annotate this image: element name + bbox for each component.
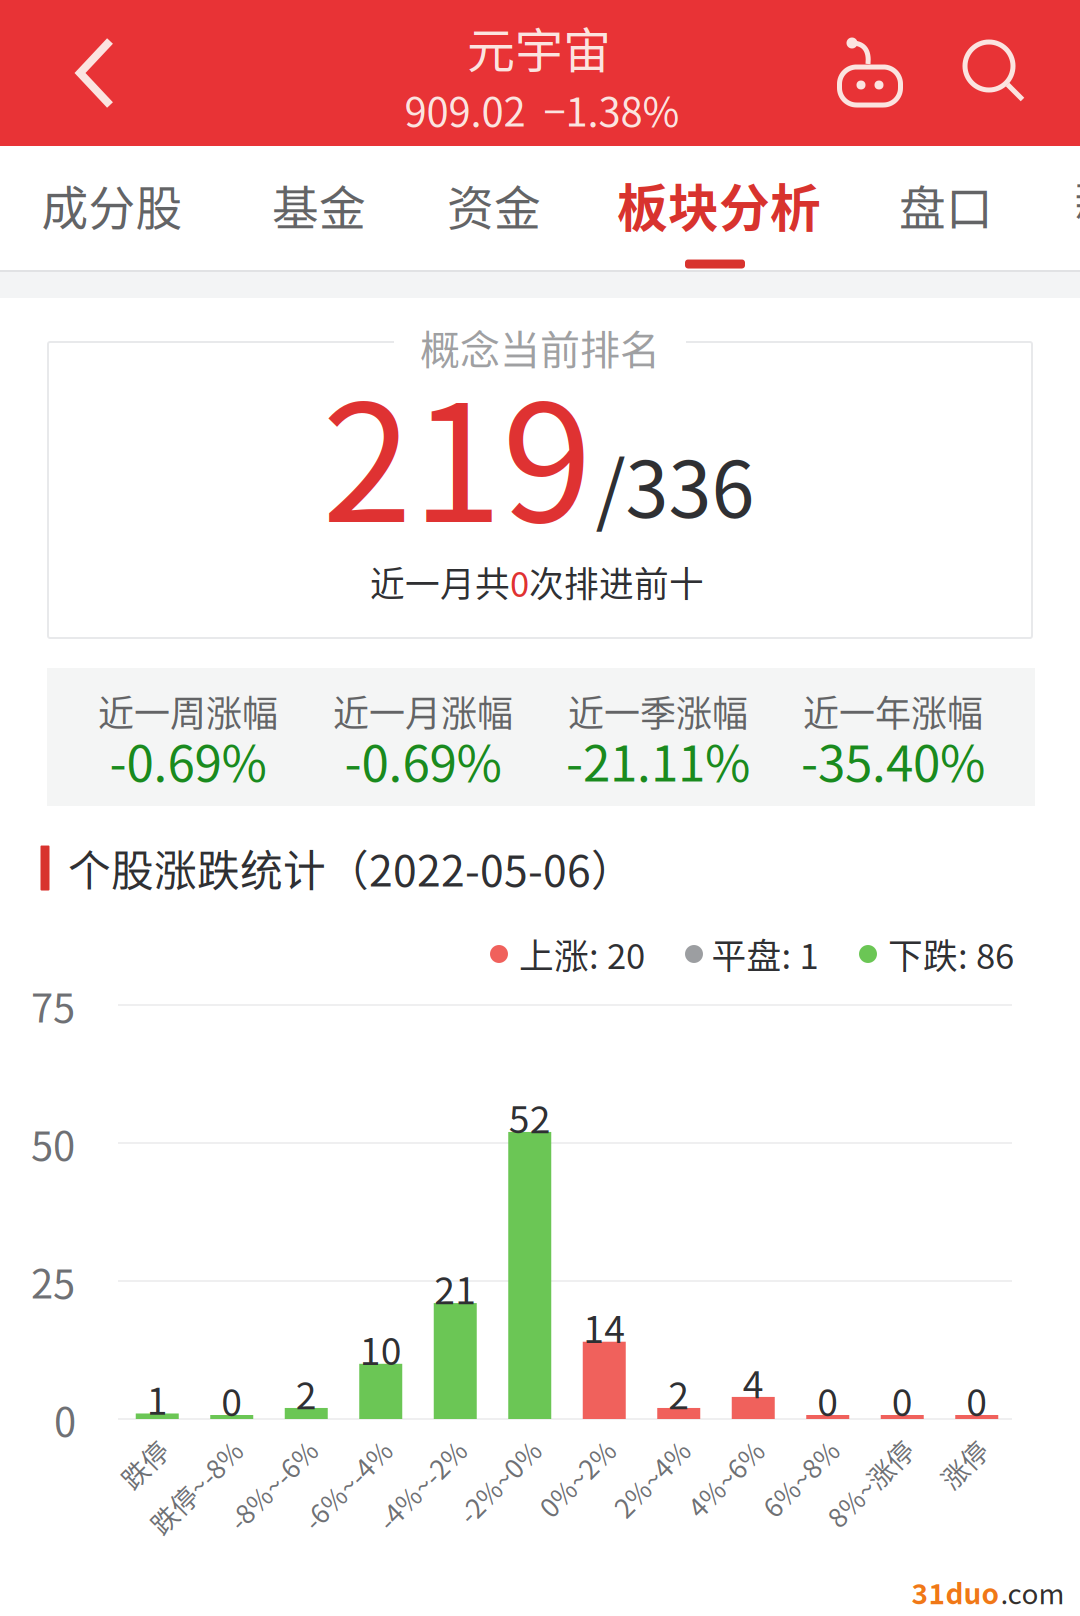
staticText: 近一年涨幅: [803, 685, 983, 737]
button[interactable]: 盘口: [856, 146, 1036, 270]
staticText: 0: [54, 1390, 76, 1448]
staticText: -35.40%: [801, 724, 985, 796]
staticText: 近一月涨幅: [333, 685, 513, 737]
staticText: 0%~2%: [530, 1459, 625, 1497]
staticText: 盘口: [899, 171, 993, 239]
staticText: -8%~-6%: [216, 1465, 329, 1504]
staticText: 52: [509, 1090, 551, 1144]
staticText: 50: [31, 1114, 75, 1172]
button[interactable]: 基金: [229, 146, 409, 270]
staticText: 资金: [447, 171, 541, 239]
staticText: 4: [743, 1355, 764, 1409]
staticText: 元宇宙: [467, 12, 611, 82]
staticText: 1: [147, 1371, 168, 1426]
staticText: -21.11%: [566, 724, 750, 796]
staticText: -6%~-4%: [291, 1465, 404, 1504]
staticText: -0.69%: [344, 724, 501, 796]
staticText: /336: [595, 428, 754, 540]
button[interactable]: Assistant: [818, 1, 922, 147]
staticText: 2: [668, 1366, 689, 1420]
staticText: 0: [221, 1373, 242, 1427]
staticText: 4%~6%: [678, 1459, 773, 1498]
staticText: 0: [966, 1373, 987, 1427]
staticText: 下跌: 86: [888, 929, 1014, 979]
staticText: 次排进前十: [529, 557, 704, 607]
staticText: .com: [1000, 1572, 1064, 1612]
staticText: -4%~-2%: [365, 1465, 478, 1504]
staticText: 成分股: [41, 171, 182, 239]
staticText: 2: [296, 1366, 317, 1420]
staticText: 板块分析: [617, 168, 821, 242]
button[interactable]: 板块分析: [589, 146, 849, 270]
staticText: 跌停: [117, 1445, 171, 1483]
button[interactable]: Search: [943, 0, 1047, 145]
button[interactable]: 资金: [404, 146, 584, 270]
staticText: 近一月共: [370, 557, 510, 607]
staticText: 909.02 −1.38%: [404, 80, 679, 138]
staticText: 涨停: [937, 1445, 991, 1483]
staticText: 0: [817, 1373, 838, 1427]
staticText: 25: [31, 1252, 75, 1310]
staticText: 平盘: 1: [711, 929, 818, 979]
staticText: -2%~0%: [447, 1462, 551, 1501]
staticText: 219: [322, 333, 592, 569]
staticText: 新: [1074, 165, 1080, 233]
staticText: 8%~涨停: [816, 1464, 925, 1502]
staticText: 2%~4%: [604, 1459, 699, 1497]
staticText: 14: [583, 1300, 625, 1354]
staticText: 近一季涨幅: [568, 685, 748, 737]
staticText: 31duo: [911, 1572, 999, 1612]
button[interactable]: Back: [25, 0, 165, 146]
staticText: 75: [31, 976, 75, 1034]
staticText: 个股涨跌统计（2022-05-06）: [68, 837, 634, 899]
staticText: 0: [510, 557, 529, 607]
staticText: 基金: [272, 171, 366, 239]
staticText: 概念当前排名: [420, 318, 660, 376]
staticText: 6%~8%: [753, 1459, 848, 1497]
staticText: 21: [434, 1261, 476, 1315]
button[interactable]: 成分股: [22, 146, 202, 270]
staticText: 0: [892, 1373, 913, 1427]
staticText: 上涨: 20: [519, 929, 645, 979]
staticText: 近一周涨幅: [98, 685, 278, 737]
staticText: 10: [360, 1322, 402, 1376]
staticText: -0.69%: [109, 724, 266, 796]
staticText: 跌停~-8%: [137, 1467, 255, 1506]
